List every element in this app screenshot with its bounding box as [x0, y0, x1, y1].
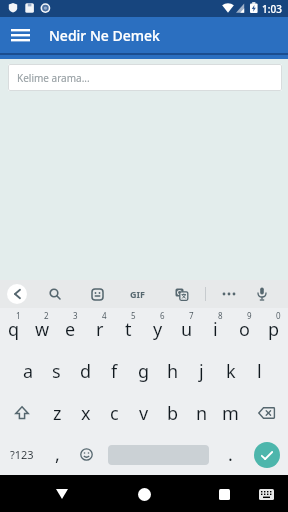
staticText: v — [139, 401, 149, 426]
staticText: 7 — [189, 310, 194, 321]
button[interactable] — [172, 285, 190, 303]
staticText: 1:03 — [262, 2, 282, 16]
button[interactable]: . — [216, 434, 245, 475]
staticText: f — [111, 359, 118, 384]
button[interactable] — [245, 434, 288, 475]
button[interactable] — [0, 17, 40, 53]
staticText: 2 — [44, 310, 49, 321]
staticText: e — [65, 317, 76, 342]
staticText: 5 — [131, 310, 136, 321]
button[interactable]: f — [100, 350, 129, 392]
button[interactable] — [72, 434, 101, 475]
staticText: r — [96, 317, 104, 342]
button[interactable]: GIF — [123, 285, 151, 303]
button[interactable]: e — [56, 308, 85, 350]
button[interactable] — [210, 480, 238, 508]
staticText: x — [81, 401, 91, 426]
button[interactable] — [252, 480, 280, 508]
staticText: 9 — [247, 310, 252, 321]
button[interactable] — [7, 284, 27, 304]
button[interactable]: b — [158, 392, 187, 434]
staticText: w — [35, 317, 50, 342]
button[interactable]: r — [85, 308, 114, 350]
button[interactable]: t — [114, 308, 143, 350]
button[interactable]: w — [28, 308, 56, 350]
button[interactable]: s — [42, 350, 71, 392]
staticText: , — [55, 442, 60, 467]
button[interactable]: k — [216, 350, 245, 392]
staticText: z — [53, 401, 62, 426]
staticText: i — [213, 317, 218, 342]
button[interactable]: j — [187, 350, 216, 392]
staticText: Nedir Ne Demek — [49, 26, 160, 45]
staticText: s — [52, 359, 61, 384]
button[interactable]: , — [43, 434, 72, 475]
button[interactable]: ?123 — [0, 434, 43, 475]
staticText: GIF — [130, 288, 145, 300]
button[interactable]: y — [143, 308, 172, 350]
staticText: p — [268, 317, 280, 342]
button[interactable]: x — [71, 392, 100, 434]
staticText: n — [196, 401, 208, 426]
button[interactable] — [46, 285, 64, 303]
button[interactable] — [101, 434, 216, 475]
button[interactable]: a — [14, 350, 42, 392]
button[interactable] — [0, 392, 43, 434]
staticText: 8 — [218, 310, 223, 321]
button[interactable]: c — [100, 392, 129, 434]
button[interactable] — [220, 285, 238, 303]
button[interactable]: v — [129, 392, 158, 434]
button[interactable]: i — [201, 308, 230, 350]
staticText: l — [257, 359, 262, 384]
staticText: a — [23, 359, 34, 384]
button[interactable]: o — [230, 308, 259, 350]
staticText: . — [228, 442, 233, 467]
staticText: 6 — [160, 310, 165, 321]
staticText: 0 — [276, 310, 281, 321]
button[interactable]: m — [216, 392, 245, 434]
staticText: j — [199, 359, 204, 384]
button[interactable] — [245, 392, 288, 434]
button[interactable]: n — [187, 392, 216, 434]
staticText: ?123 — [10, 447, 34, 462]
button[interactable]: d — [71, 350, 100, 392]
button[interactable]: p — [259, 308, 288, 350]
button[interactable]: u — [172, 308, 201, 350]
staticText: t — [125, 317, 132, 342]
staticText: u — [181, 317, 193, 342]
staticText: c — [110, 401, 119, 426]
staticText: Kelime arama... — [17, 71, 90, 85]
button[interactable]: z — [43, 392, 71, 434]
staticText: o — [239, 317, 250, 342]
staticText: b — [167, 401, 179, 426]
staticText: 3 — [73, 310, 78, 321]
button[interactable]: g — [129, 350, 158, 392]
staticText: h — [167, 359, 179, 384]
button[interactable]: h — [158, 350, 187, 392]
button[interactable]: Kelime arama... — [8, 64, 282, 91]
staticText: q — [8, 317, 20, 342]
button[interactable] — [48, 480, 76, 508]
staticText: d — [80, 359, 92, 384]
staticText: y — [153, 317, 163, 342]
button[interactable] — [88, 285, 106, 303]
button[interactable] — [253, 285, 271, 303]
staticText: 4 — [102, 310, 107, 321]
staticText: m — [222, 401, 239, 426]
staticText: g — [138, 359, 150, 384]
staticText: k — [226, 359, 236, 384]
button[interactable]: l — [245, 350, 274, 392]
button[interactable] — [130, 480, 158, 508]
button[interactable]: q — [0, 308, 28, 350]
staticText: 1 — [16, 310, 21, 321]
